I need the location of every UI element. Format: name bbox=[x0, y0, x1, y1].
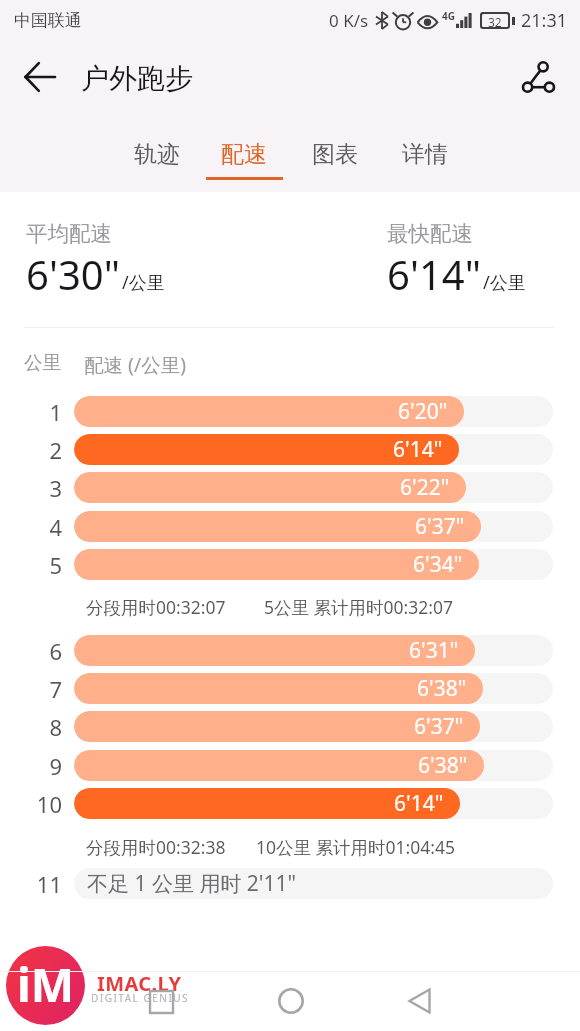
staticText: 10 bbox=[0, 789, 62, 819]
button[interactable]: Back bbox=[10, 47, 70, 107]
staticText: 6'14" bbox=[387, 247, 481, 301]
button[interactable]: 4 bbox=[0, 511, 580, 542]
staticText: 32 bbox=[488, 14, 502, 27]
staticText: 公里 bbox=[24, 351, 61, 374]
button[interactable]: 轨迹 bbox=[112, 126, 202, 192]
staticText: 图表 bbox=[312, 140, 358, 169]
staticText: 配速 (/公里) bbox=[84, 351, 187, 378]
staticText: 1 bbox=[0, 397, 62, 427]
button[interactable]: 10 bbox=[0, 788, 580, 819]
staticText: 5公里 累计用时00:32:07 bbox=[264, 595, 453, 619]
staticText: 详情 bbox=[402, 140, 448, 169]
staticText: 4G bbox=[442, 9, 455, 23]
button[interactable]: 7 bbox=[0, 673, 580, 704]
button[interactable]: 8 bbox=[0, 711, 580, 742]
button[interactable]: Recents bbox=[136, 976, 187, 1027]
staticText: 最快配速 bbox=[387, 220, 473, 247]
staticText: 6'20" bbox=[398, 397, 448, 426]
staticText: /公里 bbox=[483, 270, 526, 295]
staticText: 中国联通 bbox=[14, 10, 82, 31]
button[interactable]: 3 bbox=[0, 472, 580, 503]
staticText: 6'14" bbox=[393, 435, 443, 464]
staticText: IMAC.LY bbox=[97, 970, 182, 997]
button[interactable]: 11 bbox=[0, 868, 580, 899]
staticText: 7 bbox=[0, 674, 62, 704]
staticText: 轨迹 bbox=[134, 140, 180, 169]
staticText: 分段用时00:32:38 bbox=[86, 835, 226, 859]
button[interactable]: 6 bbox=[0, 635, 580, 666]
button[interactable]: Home bbox=[265, 975, 316, 1026]
staticText: 6'37" bbox=[415, 512, 465, 541]
staticText: 6'38" bbox=[418, 751, 468, 780]
staticText: DIGITAL GENIUS bbox=[91, 991, 190, 1005]
button[interactable]: 图表 bbox=[290, 126, 380, 192]
staticText: 3 bbox=[0, 473, 62, 503]
staticText: 6'14" bbox=[394, 789, 444, 818]
staticText: iM bbox=[17, 953, 75, 1016]
button[interactable]: 详情 bbox=[380, 126, 470, 192]
button[interactable]: Back bbox=[394, 975, 445, 1026]
staticText: 10公里 累计用时01:04:45 bbox=[256, 835, 456, 859]
staticText: 11 bbox=[0, 869, 62, 899]
staticText: 2 bbox=[0, 435, 62, 465]
staticText: 8 bbox=[0, 712, 62, 742]
staticText: 6'30" bbox=[26, 247, 120, 301]
staticText: 平均配速 bbox=[26, 220, 112, 247]
staticText: 6'37" bbox=[414, 712, 464, 741]
button[interactable]: 5 bbox=[0, 549, 580, 580]
staticText: 0 K/s bbox=[329, 9, 369, 32]
button[interactable]: 9 bbox=[0, 750, 580, 781]
staticText: 6'38" bbox=[417, 674, 467, 703]
staticText: 6 bbox=[0, 636, 62, 666]
staticText: 6'22" bbox=[400, 473, 450, 502]
staticText: 6'34" bbox=[413, 550, 463, 579]
staticText: 4 bbox=[0, 512, 62, 542]
staticText: 户外跑步 bbox=[81, 61, 193, 96]
button[interactable]: 2 bbox=[0, 434, 580, 465]
button[interactable]: 1 bbox=[0, 396, 580, 427]
staticText: 不足 1 公里 用时 2'11" bbox=[87, 869, 297, 898]
button[interactable]: Share bbox=[508, 47, 568, 107]
staticText: 配速 bbox=[221, 140, 267, 169]
staticText: 分段用时00:32:07 bbox=[86, 595, 226, 619]
staticText: 21:31 bbox=[521, 8, 568, 33]
staticText: 5 bbox=[0, 550, 62, 580]
staticText: 6'31" bbox=[409, 636, 459, 665]
staticText: /公里 bbox=[122, 270, 165, 295]
staticText: 9 bbox=[0, 751, 62, 781]
button[interactable]: 配速 bbox=[199, 126, 289, 192]
